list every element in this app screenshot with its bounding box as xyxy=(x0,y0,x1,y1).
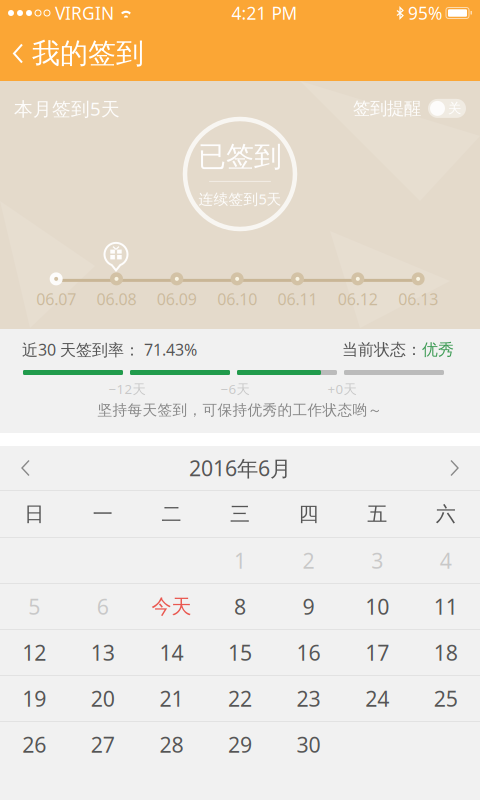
staticText: 30 xyxy=(297,730,321,759)
staticText: 今天 xyxy=(151,594,191,619)
staticText: 06.11 xyxy=(277,288,317,310)
staticText: 优秀 xyxy=(422,340,454,359)
staticText: 06.09 xyxy=(157,288,197,310)
staticText: 13 xyxy=(91,638,115,667)
button[interactable]: 1 xyxy=(206,538,274,583)
staticText: 9 xyxy=(303,592,315,621)
button[interactable]: 23 xyxy=(274,676,343,721)
staticText: 18 xyxy=(434,638,458,667)
staticText: 06.10 xyxy=(217,288,257,310)
button[interactable]: 13 xyxy=(69,630,137,675)
staticText: 06.07 xyxy=(36,288,76,310)
staticText: 2016年6月 xyxy=(189,454,291,482)
staticText: 12 xyxy=(22,638,46,667)
staticText: 15 xyxy=(228,638,252,667)
staticText: +0天 xyxy=(327,380,356,398)
staticText: 本月签到5天 xyxy=(14,96,120,121)
button[interactable]: Next month xyxy=(428,445,480,490)
staticText: 四 xyxy=(299,502,319,526)
staticText: 6 xyxy=(97,592,109,621)
staticText: 22 xyxy=(228,684,252,713)
button[interactable]: 17 xyxy=(343,630,411,675)
staticText: 23 xyxy=(297,684,321,713)
button[interactable]: 29 xyxy=(206,722,274,767)
button[interactable]: 16 xyxy=(274,630,343,675)
button[interactable]: 2 xyxy=(274,538,343,583)
staticText: 五 xyxy=(367,502,387,526)
staticText: 8 xyxy=(234,592,246,621)
staticText: 29 xyxy=(228,730,252,759)
button[interactable]: 签到提醒 xyxy=(353,98,466,119)
staticText: 24 xyxy=(365,684,389,713)
button[interactable]: 24 xyxy=(343,676,411,721)
button[interactable]: 15 xyxy=(206,630,274,675)
staticText: 25 xyxy=(434,684,458,713)
button[interactable]: 18 xyxy=(411,630,480,675)
staticText: 28 xyxy=(159,730,183,759)
button[interactable]: 22 xyxy=(206,676,274,721)
button[interactable]: 10 xyxy=(343,584,411,629)
button[interactable]: 4 xyxy=(411,538,480,583)
staticText: 06.08 xyxy=(96,288,136,310)
staticText: 已签到 xyxy=(198,140,282,174)
button[interactable]: 14 xyxy=(137,630,206,675)
button[interactable]: 30 xyxy=(274,722,343,767)
button[interactable]: 26 xyxy=(0,722,69,767)
staticText: 21 xyxy=(159,684,183,713)
staticText: 坚持每天签到，可保持优秀的工作状态哟～ xyxy=(97,401,382,419)
button[interactable]: 8 xyxy=(206,584,274,629)
staticText: 95% xyxy=(408,1,442,24)
button[interactable]: 今天 xyxy=(137,584,206,629)
button[interactable]: 28 xyxy=(137,722,206,767)
staticText: 我的签到 xyxy=(32,36,144,71)
staticText: 连续签到5天 xyxy=(198,189,281,208)
button[interactable]: 3 xyxy=(343,538,411,583)
button[interactable]: 我的签到 xyxy=(0,28,144,79)
button[interactable]: 5 xyxy=(0,584,69,629)
staticText: 一 xyxy=(93,502,113,526)
staticText: 11 xyxy=(434,592,458,621)
staticText: 近30 天签到率： 71.43% xyxy=(22,339,197,360)
staticText: 4:21 PM xyxy=(231,1,297,24)
staticText: 3 xyxy=(371,546,383,575)
staticText: 2 xyxy=(303,546,315,575)
staticText: 17 xyxy=(365,638,389,667)
staticText: 20 xyxy=(91,684,115,713)
staticText: 06.12 xyxy=(338,288,378,310)
staticText: 三 xyxy=(230,502,250,526)
staticText: 16 xyxy=(297,638,321,667)
staticText: 10 xyxy=(365,592,389,621)
staticText: 27 xyxy=(91,730,115,759)
button[interactable]: 9 xyxy=(274,584,343,629)
staticText: −6天 xyxy=(220,380,249,398)
staticText: 1 xyxy=(234,546,246,575)
button[interactable]: 21 xyxy=(137,676,206,721)
staticText: 19 xyxy=(22,684,46,713)
button[interactable]: 19 xyxy=(0,676,69,721)
staticText: 六 xyxy=(436,502,456,526)
button[interactable]: Previous month xyxy=(0,445,52,490)
staticText: 日 xyxy=(24,502,44,526)
staticText: 关 xyxy=(448,100,461,117)
staticText: 4 xyxy=(440,546,452,575)
button[interactable]: 25 xyxy=(411,676,480,721)
staticText: 5 xyxy=(28,592,40,621)
staticText: VIRGIN xyxy=(55,1,114,24)
button[interactable]: 6 xyxy=(69,584,137,629)
staticText: 二 xyxy=(161,502,181,526)
button[interactable]: 27 xyxy=(69,722,137,767)
button[interactable]: 20 xyxy=(69,676,137,721)
staticText: 当前状态： xyxy=(342,340,422,359)
button[interactable]: 11 xyxy=(411,584,480,629)
staticText: 签到提醒 xyxy=(353,98,421,119)
button[interactable]: 12 xyxy=(0,630,69,675)
staticText: 14 xyxy=(159,638,183,667)
staticText: −12天 xyxy=(108,380,145,398)
staticText: 06.13 xyxy=(398,288,438,310)
staticText: 26 xyxy=(22,730,46,759)
